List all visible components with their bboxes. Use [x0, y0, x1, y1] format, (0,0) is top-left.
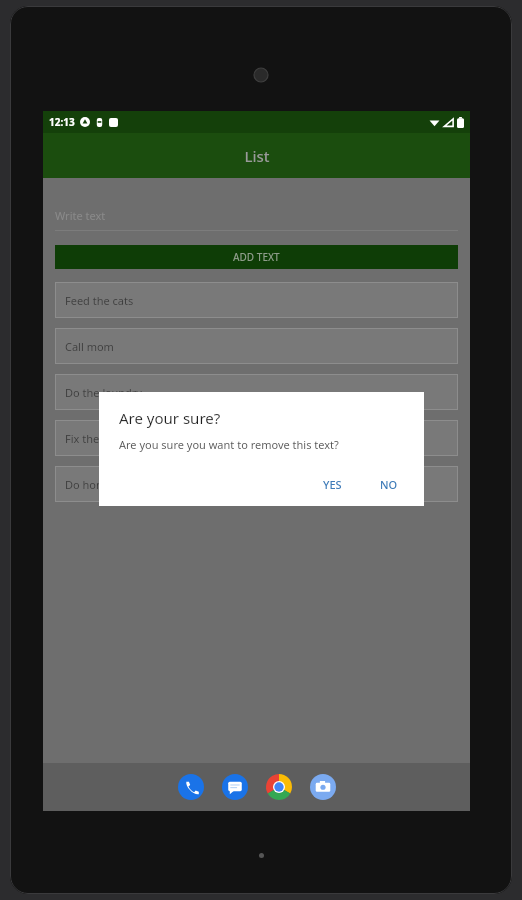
button[interactable]: Camera	[310, 774, 336, 800]
button[interactable]: YES	[315, 473, 350, 496]
staticText: Fix the bike	[65, 431, 124, 446]
staticText: List	[244, 146, 270, 166]
button[interactable]: Do the laundry	[55, 374, 458, 410]
staticText: YES	[323, 477, 342, 492]
button[interactable]: Feed the cats	[55, 282, 458, 318]
button[interactable]: Call mom	[55, 328, 458, 364]
staticText: Do the laundry	[65, 385, 142, 400]
button[interactable]: Phone	[178, 774, 204, 800]
staticText: Are you sure you want to remove this tex…	[119, 437, 339, 452]
button[interactable]: Write text	[55, 208, 458, 231]
staticText: 12:13	[49, 115, 75, 129]
button[interactable]: Do homework	[55, 466, 458, 502]
staticText: Do homework	[65, 477, 138, 492]
button[interactable]: Fix the bike	[55, 420, 458, 456]
staticText: Call mom	[65, 339, 114, 354]
button[interactable]: ADD TEXT	[55, 245, 458, 269]
button[interactable]: Messages	[222, 774, 248, 800]
button[interactable]: Chrome	[266, 774, 292, 800]
staticText: Write text	[55, 208, 106, 223]
staticText: Are your sure?	[119, 408, 221, 428]
button[interactable]: NO	[372, 473, 406, 496]
staticText: NO	[380, 477, 398, 492]
staticText: ADD TEXT	[233, 250, 280, 264]
staticText: Feed the cats	[65, 293, 134, 308]
